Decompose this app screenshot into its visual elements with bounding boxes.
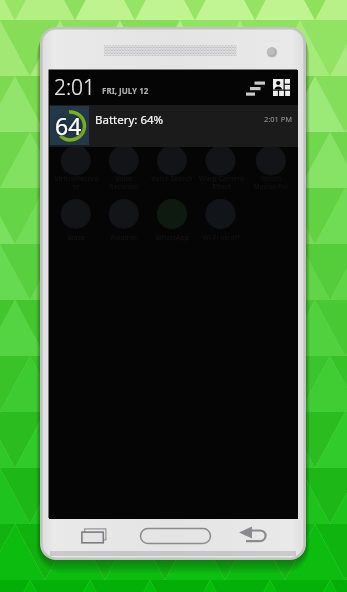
staticText: Weather bbox=[110, 233, 138, 243]
staticText: 2:01 bbox=[54, 73, 96, 102]
button[interactable]: 64 bbox=[49, 105, 298, 147]
staticText: Warp Camera Effect bbox=[199, 174, 244, 191]
button[interactable]: Recent apps bbox=[81, 527, 107, 545]
staticText: Voice Search bbox=[151, 174, 193, 184]
staticText: Waze bbox=[67, 233, 85, 243]
staticText: FRI, JULY 12 bbox=[102, 85, 149, 96]
button[interactable]: Back bbox=[238, 526, 270, 544]
button[interactable]: Notifications bbox=[246, 78, 268, 98]
button[interactable]: Quick settings bbox=[273, 79, 290, 96]
staticText: Battery: 64% bbox=[95, 112, 164, 128]
staticText: 2:01 PM bbox=[264, 114, 293, 124]
staticText: VirtualRecord er bbox=[54, 174, 99, 191]
button[interactable]: Home bbox=[140, 528, 211, 544]
staticText: Wi-Fi on off bbox=[202, 233, 240, 243]
staticText: Watch Movies For bbox=[253, 174, 289, 191]
staticText: Voice Recorder bbox=[109, 174, 139, 191]
staticText: 64 bbox=[55, 110, 82, 141]
staticText: WhatsApp bbox=[155, 233, 189, 243]
